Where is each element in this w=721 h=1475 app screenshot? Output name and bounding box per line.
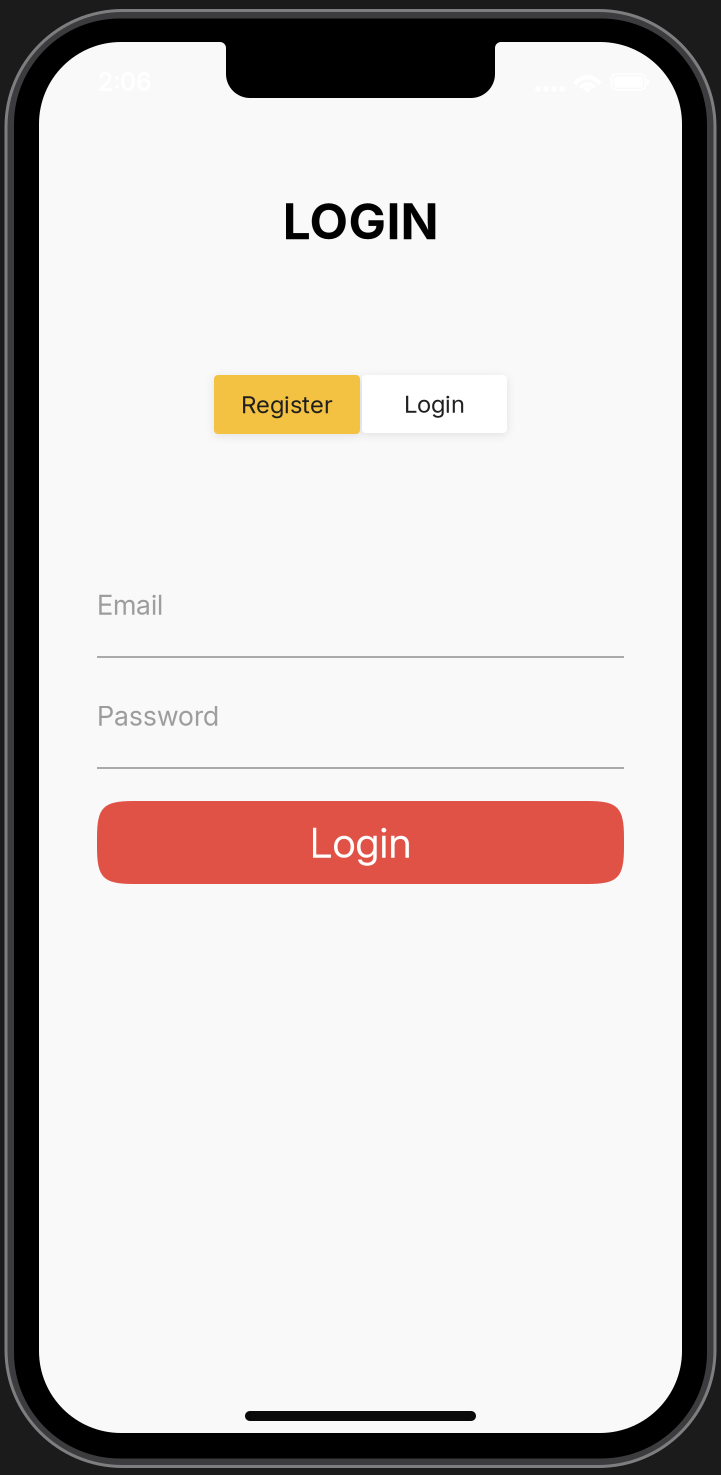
staticText: Login [404,389,465,418]
staticText: LOGIN [282,191,438,251]
staticText: Register [241,390,333,419]
staticText: Email [97,589,163,621]
staticText: Login [309,817,411,868]
staticText: Password [97,700,219,732]
button[interactable]: Login [97,801,624,884]
button[interactable]: Login [362,375,507,433]
button[interactable]: Register [214,375,360,434]
